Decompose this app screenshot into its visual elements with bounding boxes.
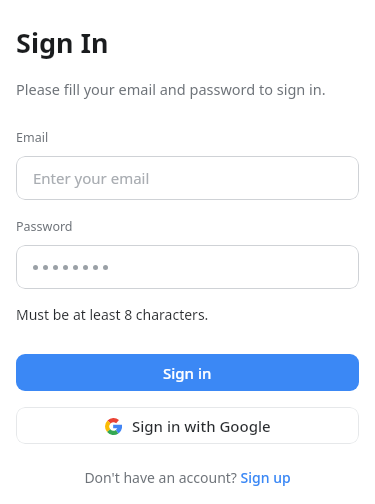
button[interactable]: Sign in — [16, 354, 359, 391]
staticText: Please fill your email and password to s… — [16, 79, 326, 99]
staticText: Sign in — [163, 363, 212, 383]
staticText: Must be at least 8 characters. — [16, 305, 209, 324]
other: Google logo — [105, 418, 122, 435]
staticText: Sign In — [16, 24, 109, 61]
staticText: Sign in with Google — [132, 416, 271, 436]
staticText: Password — [16, 218, 73, 235]
staticText: Don't have an account? Sign up — [84, 468, 291, 487]
staticText: Email — [16, 129, 49, 146]
staticText: Enter your email — [33, 168, 150, 188]
button[interactable]: Don't have an account? Sign up — [0, 468, 375, 487]
button[interactable]: Enter your email — [16, 156, 359, 200]
button[interactable]: Google logo — [16, 407, 359, 444]
button[interactable] — [16, 245, 359, 289]
